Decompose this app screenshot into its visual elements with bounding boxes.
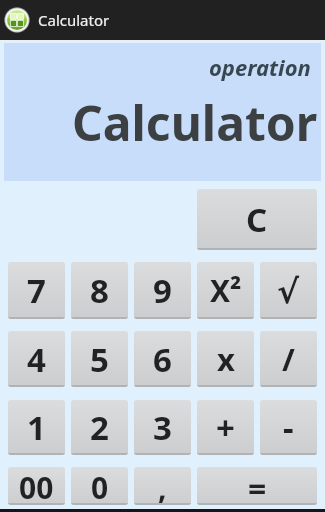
staticText: 6: [153, 337, 172, 382]
staticText: 00: [19, 467, 54, 505]
staticText: 1: [27, 405, 46, 450]
button[interactable]: X²: [197, 262, 254, 319]
staticText: 5: [90, 337, 109, 382]
button[interactable]: +: [197, 400, 254, 455]
button[interactable]: 8: [71, 262, 128, 319]
button[interactable]: x: [197, 331, 254, 387]
button[interactable]: 7: [8, 262, 65, 319]
staticText: 2: [90, 405, 109, 450]
button[interactable]: 3: [134, 400, 191, 455]
button[interactable]: =: [197, 467, 317, 505]
staticText: 0: [91, 467, 109, 505]
button[interactable]: 1: [8, 400, 65, 455]
staticText: operation: [209, 52, 311, 82]
staticText: 8: [90, 268, 109, 313]
button[interactable]: 00: [8, 467, 65, 505]
button[interactable]: 6: [134, 331, 191, 387]
staticText: 9: [153, 268, 172, 313]
staticText: X²: [210, 270, 242, 311]
button[interactable]: 0: [71, 467, 128, 505]
staticText: 3: [153, 405, 172, 450]
staticText: Calculator: [72, 90, 318, 155]
staticText: √: [277, 272, 300, 310]
staticText: C: [246, 197, 268, 242]
staticText: /: [282, 338, 295, 380]
button[interactable]: 4: [8, 331, 65, 387]
button[interactable]: /: [260, 331, 317, 387]
staticText: x: [217, 338, 235, 380]
button[interactable]: 5: [71, 331, 128, 387]
staticText: Calculator: [38, 10, 110, 30]
staticText: +: [216, 405, 235, 450]
staticText: 4: [27, 337, 46, 382]
button[interactable]: 2: [71, 400, 128, 455]
button[interactable]: ,: [134, 467, 191, 505]
button[interactable]: 9: [134, 262, 191, 319]
staticText: ,: [158, 467, 167, 505]
button[interactable]: √: [260, 262, 317, 319]
staticText: -: [283, 405, 294, 450]
staticText: =: [248, 467, 267, 505]
staticText: 7: [27, 268, 46, 313]
button[interactable]: -: [260, 400, 317, 455]
button[interactable]: C: [197, 189, 317, 250]
